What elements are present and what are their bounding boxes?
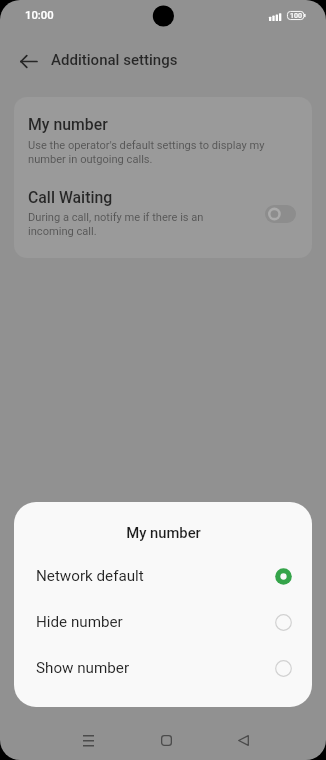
button[interactable]: Home (143, 717, 189, 760)
staticText: Hide number (36, 613, 123, 631)
button[interactable]: Call Waiting (14, 177, 312, 258)
staticText: Use the operator's default settings to d… (28, 139, 273, 166)
staticText: Show number (36, 659, 130, 677)
staticText: Additional settings (51, 51, 178, 69)
button[interactable]: Call waiting switch (265, 205, 296, 223)
staticText: 100 (290, 12, 302, 20)
staticText: Call Waiting (28, 188, 113, 207)
button[interactable]: Hide number (14, 599, 312, 645)
staticText: My number (126, 524, 201, 541)
button[interactable]: Back (220, 717, 266, 760)
button[interactable]: Recent apps (65, 717, 111, 760)
button[interactable]: Back (7, 40, 49, 82)
button[interactable]: Network default (14, 553, 312, 599)
staticText: Network default (36, 567, 144, 585)
staticText: During a call, notify me if there is an … (28, 211, 210, 238)
staticText: My number (28, 115, 108, 134)
staticText: 10:00 (25, 9, 54, 22)
button[interactable]: Show number (14, 645, 312, 691)
button[interactable]: My number (14, 97, 312, 177)
